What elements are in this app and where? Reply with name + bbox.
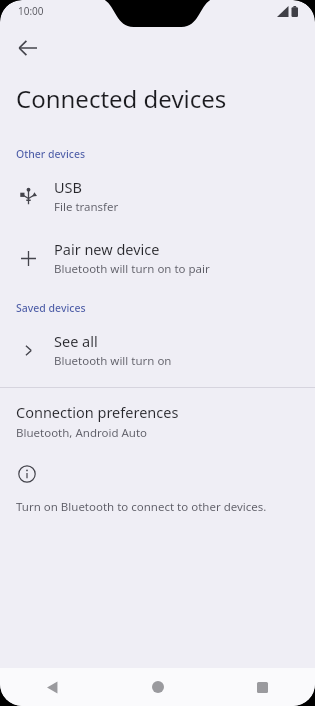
button[interactable]: Back — [0, 668, 105, 706]
staticText: Saved devices — [16, 301, 86, 315]
staticText: Turn on Bluetooth to connect to other de… — [16, 499, 267, 515]
staticText: USB — [54, 177, 82, 197]
staticText: Bluetooth, Android Auto — [16, 425, 148, 441]
staticText: Bluetooth will turn on to pair — [54, 261, 210, 277]
button[interactable]: Recent apps — [210, 668, 315, 706]
staticText: Pair new device — [54, 239, 160, 259]
staticText: Other devices — [16, 147, 86, 161]
button[interactable]: USB — [0, 173, 315, 219]
staticText: 10:00 — [18, 4, 44, 18]
staticText: Bluetooth will turn on — [54, 353, 172, 369]
staticText: See all — [54, 331, 98, 351]
staticText: Connected devices — [16, 82, 227, 115]
button[interactable]: Connection preferences — [0, 388, 315, 451]
staticText: Connection preferences — [16, 402, 179, 422]
button[interactable]: Pair new device — [0, 235, 315, 281]
button[interactable]: Home — [105, 668, 210, 706]
button[interactable]: Back — [8, 28, 48, 68]
button[interactable]: See all — [0, 327, 315, 373]
staticText: File transfer — [54, 199, 119, 215]
